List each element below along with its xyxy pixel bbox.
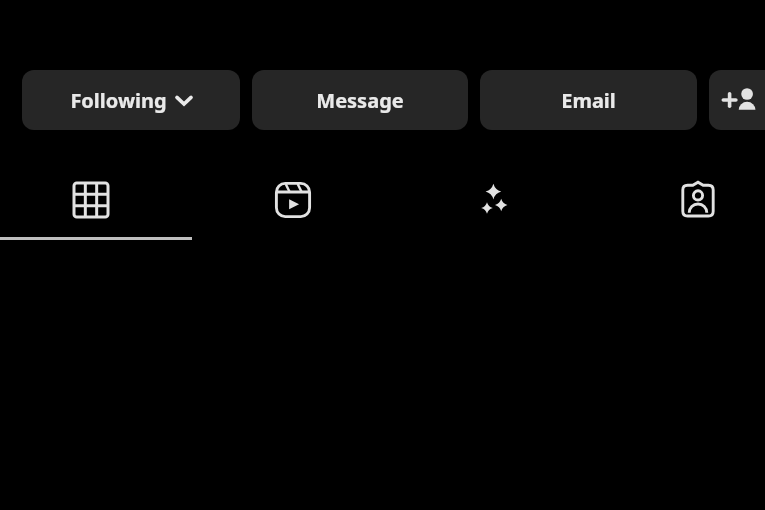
button[interactable]: Posts grid [59,168,123,232]
button[interactable]: Email [480,70,697,130]
button[interactable]: Message [252,70,468,130]
button[interactable]: AI highlights [463,168,527,232]
button[interactable]: Reels [261,168,325,232]
staticText: Email [561,87,616,114]
button[interactable]: Add person [709,70,765,130]
staticText: Following [70,87,167,114]
button[interactable]: Following [22,70,240,130]
button[interactable]: Tagged [666,168,730,232]
staticText: Message [316,87,404,114]
